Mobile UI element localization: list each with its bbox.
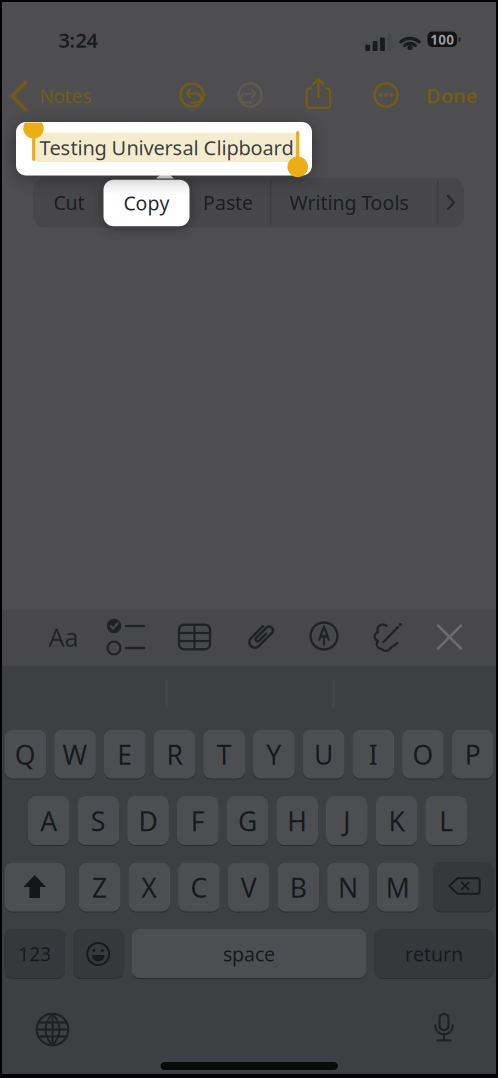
button[interactable]: Checklist [103, 616, 147, 658]
button[interactable]: space [131, 929, 366, 979]
staticText: O [412, 736, 433, 773]
button[interactable]: Copy [103, 180, 189, 226]
staticText: S [91, 803, 106, 839]
staticText: Z [92, 869, 107, 906]
staticText: B [290, 869, 307, 906]
button[interactable]: I [352, 729, 394, 779]
staticText: T [217, 736, 232, 773]
staticText: L [439, 803, 453, 839]
button[interactable]: Dictate [434, 1009, 454, 1042]
button[interactable]: Q [4, 729, 46, 779]
button[interactable]: Y [253, 729, 295, 779]
staticText: Paste [203, 189, 253, 216]
staticText: C [190, 869, 207, 906]
button[interactable]: C [178, 862, 220, 912]
button[interactable]: More [370, 79, 402, 111]
button[interactable]: Shift [4, 862, 65, 912]
button[interactable]: More actions [442, 192, 459, 212]
staticText: Copy [123, 190, 169, 216]
button[interactable]: F [177, 796, 219, 846]
staticText: G [238, 803, 257, 839]
staticText: J [343, 803, 350, 839]
staticText: X [141, 869, 157, 906]
staticText: F [191, 803, 205, 839]
staticText: H [287, 803, 307, 839]
staticText: P [465, 736, 481, 773]
button[interactable]: H [276, 796, 318, 846]
staticText: R [166, 736, 182, 773]
button[interactable]: L [425, 796, 467, 846]
button[interactable]: G [227, 796, 268, 846]
button[interactable]: Z [79, 862, 120, 912]
button[interactable]: S [77, 796, 119, 846]
staticText: space [223, 941, 275, 967]
button[interactable]: Undo [176, 79, 208, 111]
staticText: Aa [48, 620, 78, 654]
button[interactable]: Aa [38, 615, 88, 659]
button[interactable]: W [54, 729, 96, 779]
button[interactable]: Done [426, 82, 478, 109]
button[interactable]: U [303, 729, 344, 779]
staticText: 3:24 [58, 26, 97, 54]
button[interactable]: Emoji [73, 929, 123, 979]
staticText: Writing Tools [289, 189, 408, 216]
staticText: Testing Universal Clipboard [39, 134, 293, 161]
button[interactable]: N [327, 862, 369, 912]
staticText: Y [266, 736, 281, 773]
button[interactable]: Numbers [4, 929, 65, 979]
button[interactable]: E [104, 729, 146, 779]
button[interactable]: Close [438, 625, 461, 648]
staticText: E [117, 736, 132, 773]
button[interactable]: Markup [307, 619, 341, 653]
button[interactable]: Notes [5, 80, 105, 112]
staticText: M [386, 869, 410, 906]
button[interactable]: A [28, 796, 69, 846]
staticText: 100 [430, 30, 454, 49]
button[interactable]: Attach [240, 616, 280, 656]
staticText: V [241, 869, 257, 906]
button[interactable]: D [127, 796, 169, 846]
staticText: 123 [18, 941, 51, 967]
button[interactable]: return [374, 929, 493, 979]
staticText: Done [426, 82, 478, 109]
staticText: W [63, 736, 88, 773]
staticText: D [139, 803, 158, 839]
button[interactable]: X [128, 862, 170, 912]
staticText: N [338, 869, 358, 906]
button[interactable]: R [154, 729, 195, 779]
staticText: return [405, 941, 463, 967]
staticText: K [389, 803, 405, 839]
button[interactable]: Redo [234, 79, 266, 111]
button[interactable]: Delete [433, 862, 493, 912]
button[interactable]: Writing Tools [256, 178, 441, 227]
button[interactable]: Next keyboard [35, 1012, 69, 1046]
staticText: Cut [53, 189, 84, 216]
staticText: Q [15, 736, 36, 773]
button[interactable]: M [377, 862, 419, 912]
button[interactable]: Cut [36, 178, 102, 227]
button[interactable]: K [376, 796, 417, 846]
staticText: I [369, 736, 378, 773]
button[interactable]: Handwriting [373, 621, 402, 653]
button[interactable]: Table [179, 625, 210, 649]
staticText: A [40, 803, 57, 839]
button[interactable]: O [402, 729, 444, 779]
staticText: Notes [39, 83, 91, 109]
staticText: U [314, 736, 333, 773]
button[interactable]: B [277, 862, 319, 912]
button[interactable]: J [326, 796, 368, 846]
button[interactable]: T [203, 729, 245, 779]
button[interactable]: Share [302, 76, 336, 112]
button[interactable]: P [452, 729, 493, 779]
button[interactable]: V [228, 862, 269, 912]
button[interactable]: Paste [190, 178, 266, 227]
